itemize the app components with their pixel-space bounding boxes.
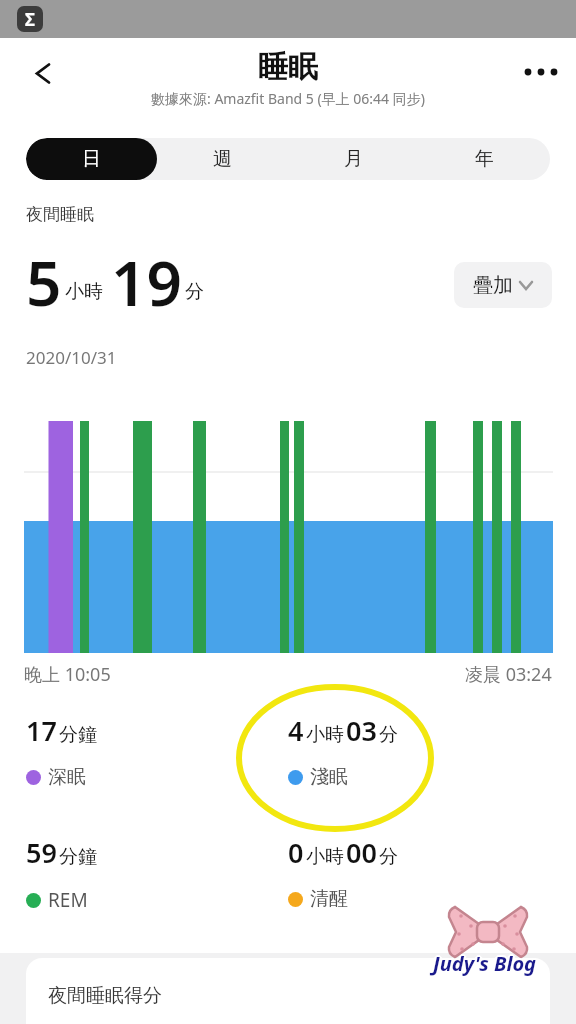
staticText: 月 xyxy=(344,147,363,171)
staticText: 睡眠 xyxy=(258,48,318,84)
staticText: 小時 xyxy=(306,723,344,747)
button[interactable]: 月 xyxy=(288,138,419,180)
staticText: 2020/10/31 xyxy=(26,346,117,369)
staticText: 分 xyxy=(379,723,398,747)
staticText: 小時 xyxy=(306,845,344,869)
staticText: 00 xyxy=(346,834,377,871)
staticText: Judy's Blog xyxy=(433,950,537,977)
staticText: Judy's Blog xyxy=(432,949,536,976)
staticText: Judy's Blog xyxy=(435,950,539,977)
button[interactable]: 疊加 xyxy=(454,262,552,308)
staticText: 0 xyxy=(288,834,304,871)
staticText: 凌晨 03:24 xyxy=(465,662,552,687)
button[interactable] xyxy=(35,63,51,84)
staticText: 分 xyxy=(185,280,204,304)
button[interactable]: 日 xyxy=(26,138,157,180)
staticText: 晚上 10:05 xyxy=(24,662,111,687)
staticText: 夜間睡眠得分 xyxy=(48,984,162,1008)
staticText: 日 xyxy=(82,147,101,171)
staticText: Σ xyxy=(25,8,35,31)
staticText: Judy's Blog xyxy=(433,952,537,979)
staticText: Judy's Blog xyxy=(433,948,537,975)
staticText: 小時 xyxy=(65,280,103,304)
staticText: 4 xyxy=(288,712,304,749)
staticText: 19 xyxy=(111,240,182,314)
button[interactable]: 年 xyxy=(419,138,550,180)
staticText: 週 xyxy=(213,147,232,171)
staticText: 疊加 xyxy=(473,273,513,298)
staticText: 分 xyxy=(379,845,398,869)
staticText: 分鐘 xyxy=(59,845,97,869)
staticText: 03 xyxy=(346,712,377,749)
staticText: 深眠 xyxy=(48,765,86,789)
staticText: 年 xyxy=(475,147,494,171)
staticText: 淺眠 xyxy=(310,765,348,789)
button[interactable]: 夜間睡眠得分 xyxy=(26,958,550,1024)
staticText: REM xyxy=(48,887,88,913)
staticText: Judy's Blog xyxy=(432,951,536,978)
staticText: 分鐘 xyxy=(59,723,97,747)
button[interactable]: 週 xyxy=(157,138,288,180)
staticText: 17 xyxy=(26,712,57,749)
button[interactable] xyxy=(524,62,564,82)
staticText: 5 xyxy=(26,240,62,314)
staticText: 清醒 xyxy=(310,887,348,911)
staticText: 數據來源: Amazfit Band 5 (早上 06:44 同步) xyxy=(151,89,425,108)
staticText: 夜間睡眠 xyxy=(26,204,94,225)
staticText: 59 xyxy=(26,834,57,871)
staticText: Judy's Blog xyxy=(434,949,538,976)
staticText: Judy's Blog xyxy=(431,950,535,977)
staticText: Judy's Blog xyxy=(434,951,538,978)
